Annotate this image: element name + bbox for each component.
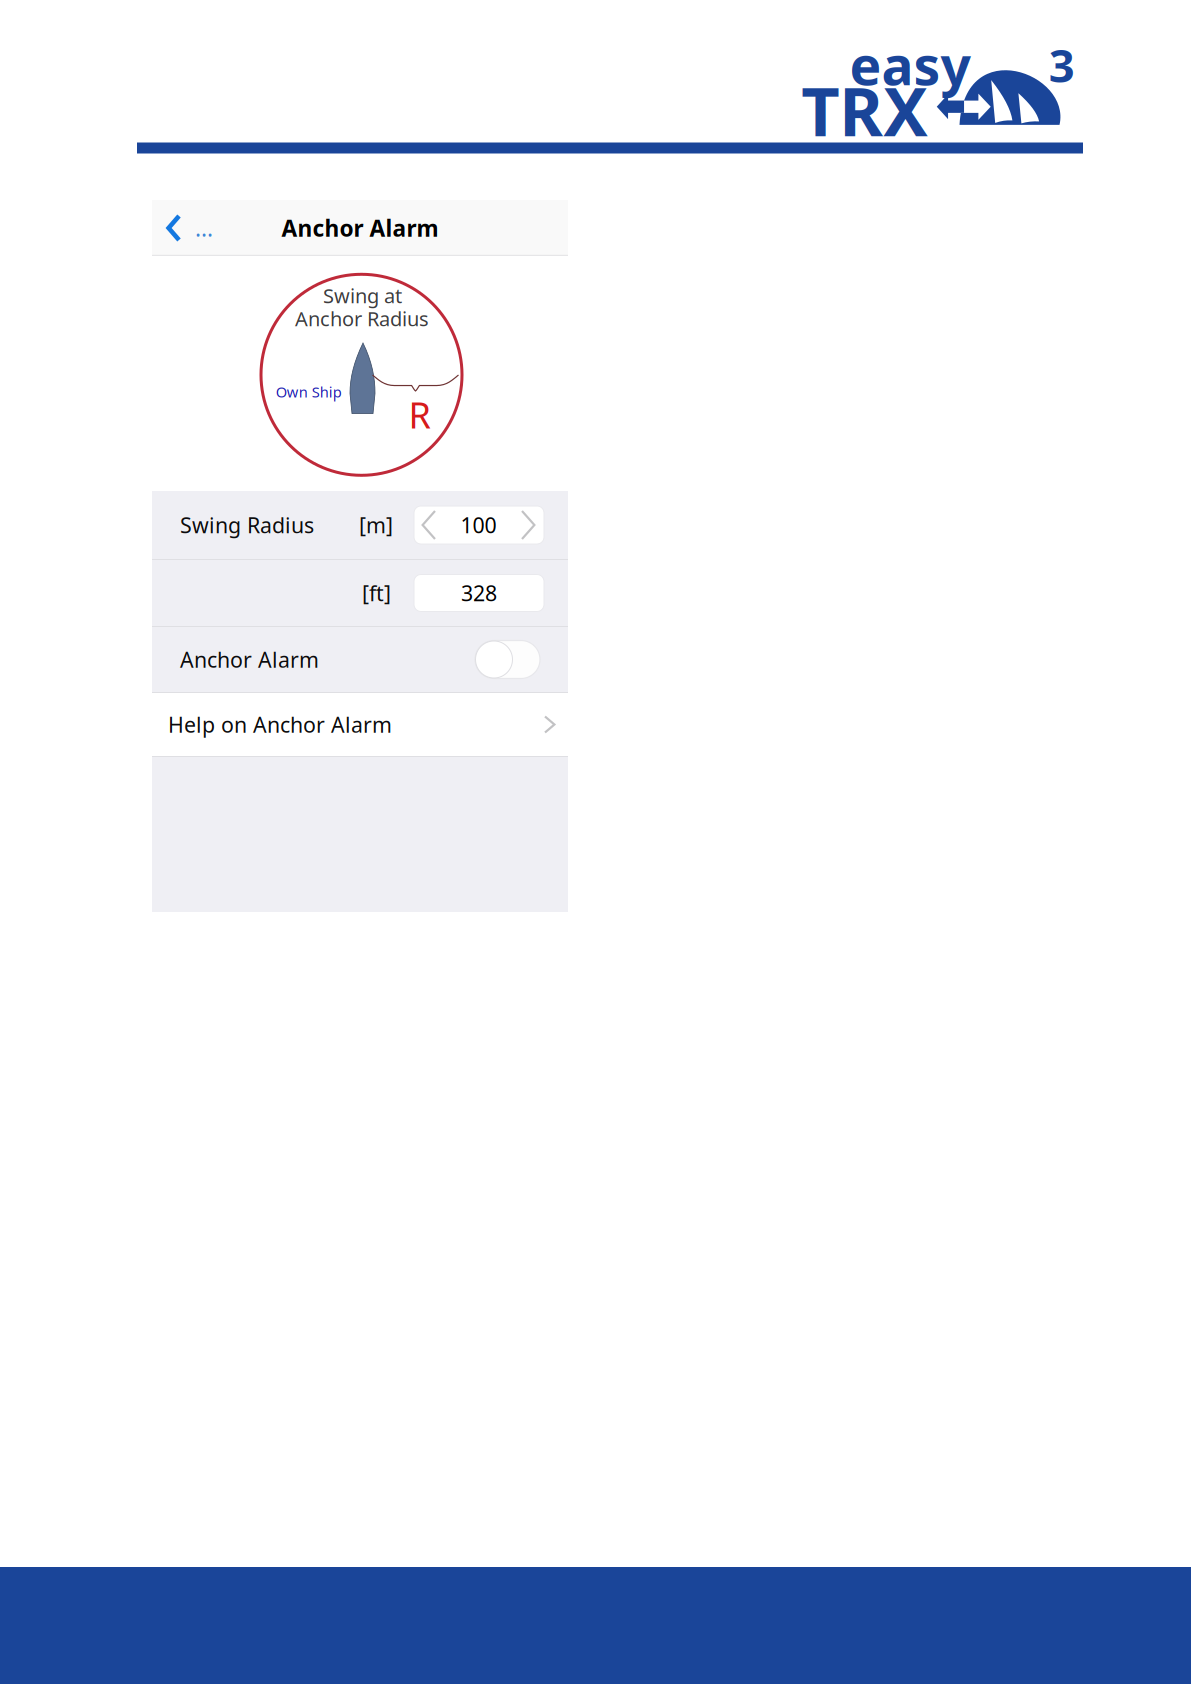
staticText: TRX — [801, 66, 928, 155]
button[interactable]: Swing radius in metres — [414, 506, 544, 544]
staticText: easy — [850, 29, 971, 100]
staticText: 3 — [1049, 35, 1075, 95]
staticText: [ft] — [362, 579, 391, 607]
staticText: 100 — [460, 511, 496, 539]
button[interactable]: Back — [152, 200, 223, 256]
staticText: Anchor Radius — [295, 305, 429, 332]
staticText: Swing at — [323, 282, 402, 309]
button[interactable]: Anchor Alarm — [475, 640, 540, 678]
staticText: Anchor Alarm — [281, 213, 438, 243]
staticText: Own Ship — [276, 382, 342, 402]
button[interactable]: Help on Anchor Alarm — [152, 693, 568, 756]
staticText: Help on Anchor Alarm — [168, 710, 392, 739]
staticText: Swing Radius — [180, 511, 314, 539]
staticText: 328 — [461, 579, 497, 607]
staticText: [m] — [359, 511, 393, 539]
staticText: R — [409, 391, 431, 438]
staticText: ... — [195, 213, 213, 243]
staticText: Anchor Alarm — [180, 645, 319, 674]
button[interactable]: Swing radius in feet — [414, 574, 544, 611]
